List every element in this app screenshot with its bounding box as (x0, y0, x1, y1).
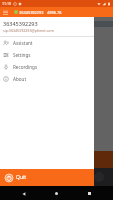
staticText: 4996.76 (47, 10, 62, 15)
other: Dial (94, 172, 104, 182)
staticText: Recordings (13, 64, 38, 70)
staticText: 11:18 (2, 1, 11, 6)
button[interactable]: Home (52, 189, 61, 198)
button[interactable]: Back (19, 189, 28, 198)
button[interactable]: About (0, 73, 94, 85)
button[interactable]: Quit (0, 169, 94, 186)
button[interactable]: Recordings (0, 61, 94, 73)
staticText: About (13, 76, 27, 82)
staticText: 36345392293 (3, 20, 38, 27)
button[interactable]: Settings (0, 49, 94, 61)
staticText: Assistant (13, 40, 33, 46)
button[interactable]: Open navigation drawer (1, 8, 10, 17)
button[interactable]: Recent apps (85, 189, 94, 198)
button[interactable]: Assistant (0, 37, 94, 49)
staticText: sip:36345392293@phinet.com (3, 28, 54, 33)
staticText: Settings (13, 52, 31, 58)
staticText: 36345392293 (19, 10, 44, 15)
staticText: Quit (16, 174, 27, 181)
